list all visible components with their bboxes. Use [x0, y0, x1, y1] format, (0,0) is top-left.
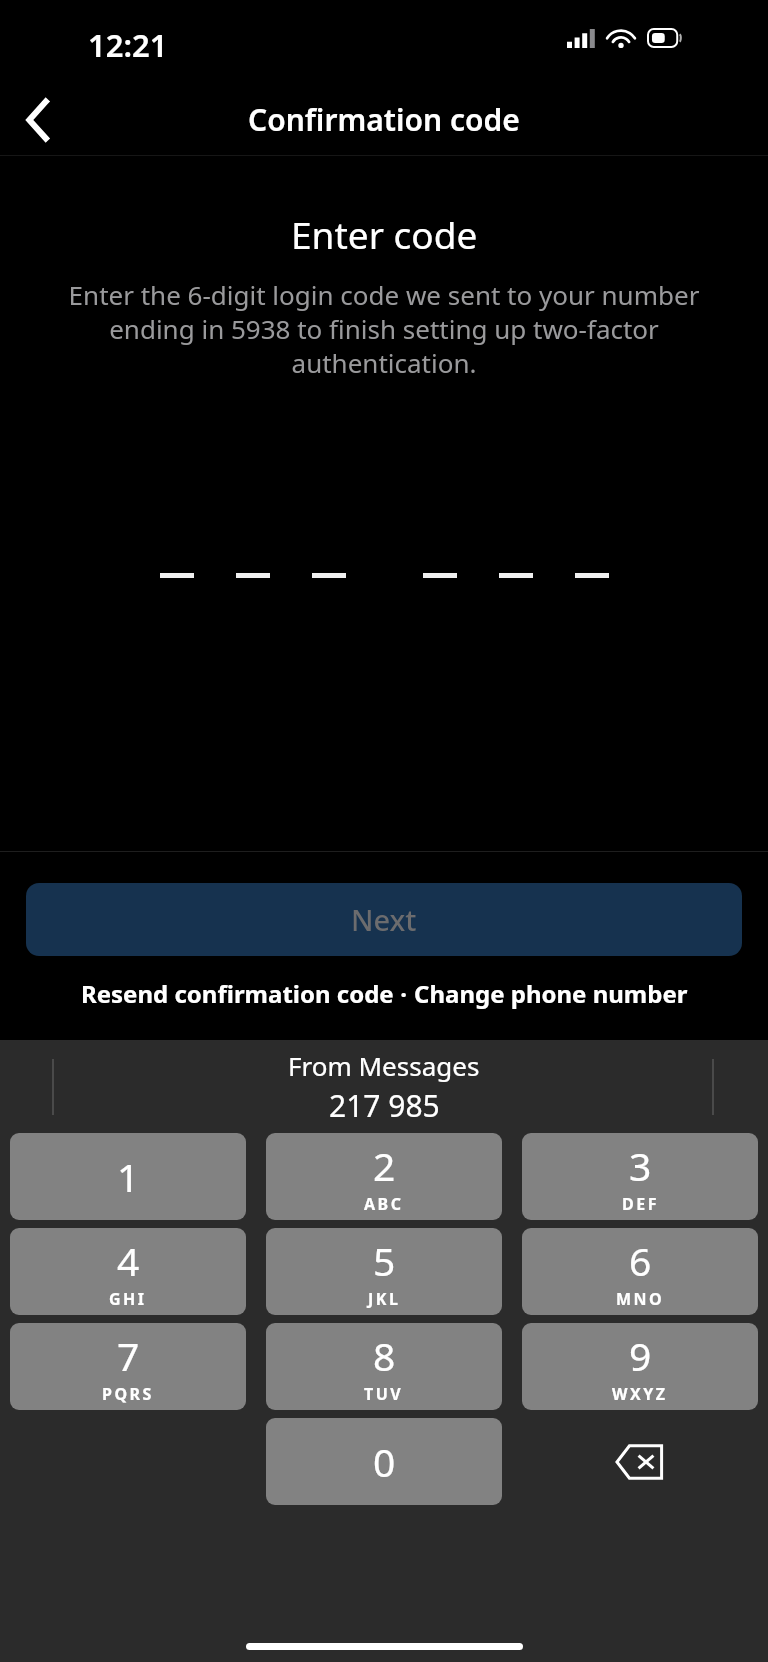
- staticText: 9: [629, 1329, 652, 1382]
- button[interactable]: 1: [10, 1133, 246, 1220]
- staticText: 4: [117, 1234, 140, 1287]
- button[interactable]: Resend confirmation code: [81, 977, 394, 1010]
- staticText: 6: [629, 1234, 652, 1287]
- staticText: 12:21: [88, 24, 168, 66]
- button[interactable]: 8: [266, 1323, 502, 1410]
- staticText: From Messages: [288, 1048, 480, 1083]
- staticText: 3: [629, 1139, 652, 1192]
- staticText: 8: [373, 1329, 396, 1382]
- staticText: MNO: [616, 1288, 665, 1310]
- staticText: Resend confirmation code: [81, 977, 394, 1010]
- staticText: ·: [394, 977, 414, 1010]
- staticText: 2: [373, 1139, 396, 1192]
- staticText: PQRS: [102, 1383, 154, 1405]
- staticText: GHI: [109, 1288, 147, 1310]
- staticText: 217 985: [329, 1085, 440, 1126]
- staticText: Change phone number: [414, 977, 688, 1010]
- staticText: Enter the 6-digit login code we sent to …: [36, 277, 732, 380]
- staticText: Enter code: [291, 209, 478, 259]
- button[interactable]: Delete: [522, 1418, 758, 1505]
- staticText: DEF: [622, 1193, 659, 1215]
- staticText: 1: [117, 1150, 140, 1203]
- button[interactable]: Back: [0, 84, 76, 155]
- staticText: JKL: [368, 1288, 401, 1310]
- button[interactable]: Change phone number: [414, 977, 688, 1010]
- button[interactable]: 3: [522, 1133, 758, 1220]
- button[interactable]: 0: [266, 1418, 502, 1505]
- staticText: Next: [351, 900, 417, 939]
- button[interactable]: 6: [522, 1228, 758, 1315]
- staticText: Confirmation code: [248, 99, 520, 140]
- staticText: WXYZ: [612, 1383, 668, 1405]
- staticText: 7: [117, 1329, 140, 1382]
- button[interactable]: 9: [522, 1323, 758, 1410]
- staticText: 5: [373, 1234, 396, 1287]
- staticText: 0: [373, 1435, 396, 1488]
- button[interactable]: 2: [266, 1133, 502, 1220]
- staticText: TUV: [364, 1383, 404, 1405]
- button[interactable]: 4: [10, 1228, 246, 1315]
- button[interactable]: 5: [266, 1228, 502, 1315]
- staticText: ABC: [364, 1193, 404, 1215]
- button[interactable]: Next: [26, 883, 742, 956]
- button[interactable]: 7: [10, 1323, 246, 1410]
